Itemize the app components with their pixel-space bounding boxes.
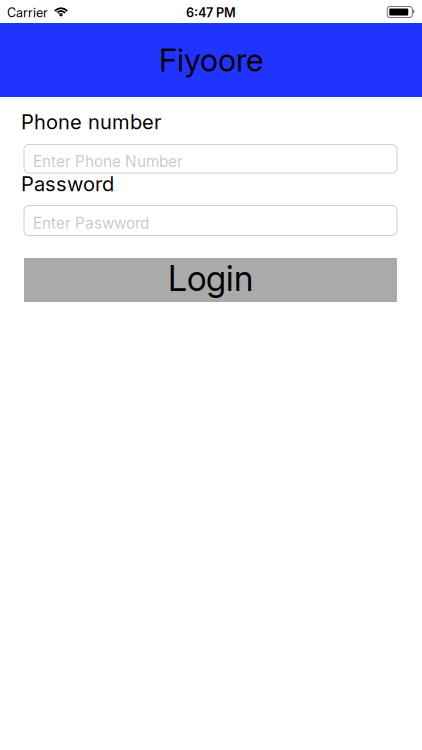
staticText: Fiyoore — [159, 41, 263, 79]
staticText: Carrier — [7, 5, 48, 20]
staticText: Password — [21, 172, 114, 196]
button[interactable]: Enter Paswword — [24, 205, 397, 235]
staticText: Enter Phone Number — [33, 152, 183, 171]
staticText: 6:47 PM — [186, 5, 236, 20]
button[interactable]: Enter Phone Number — [24, 144, 397, 173]
button[interactable]: Login — [24, 258, 397, 302]
staticText: Enter Paswword — [33, 214, 149, 232]
staticText: Login — [168, 258, 253, 299]
staticText: Phone number — [21, 110, 162, 134]
